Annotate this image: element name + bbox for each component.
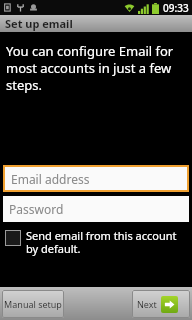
button[interactable]: Next	[132, 290, 190, 318]
button[interactable]: Email address	[5, 167, 187, 190]
button[interactable]: Manual setup	[2, 290, 64, 318]
staticText: Send email from this account by default.	[26, 228, 186, 256]
staticText: Set up email	[5, 16, 73, 31]
staticText: Password	[9, 201, 64, 217]
staticText: Email address	[11, 171, 90, 187]
staticText: Manual setup	[4, 298, 62, 310]
staticText: You can configure Email for most account…	[6, 42, 186, 94]
staticText: Next	[137, 298, 157, 310]
other: Next	[161, 296, 178, 313]
button[interactable]: Password	[3, 196, 189, 222]
staticText: 09:33	[163, 1, 189, 15]
button[interactable]: Send email from this account by default.	[5, 228, 186, 256]
